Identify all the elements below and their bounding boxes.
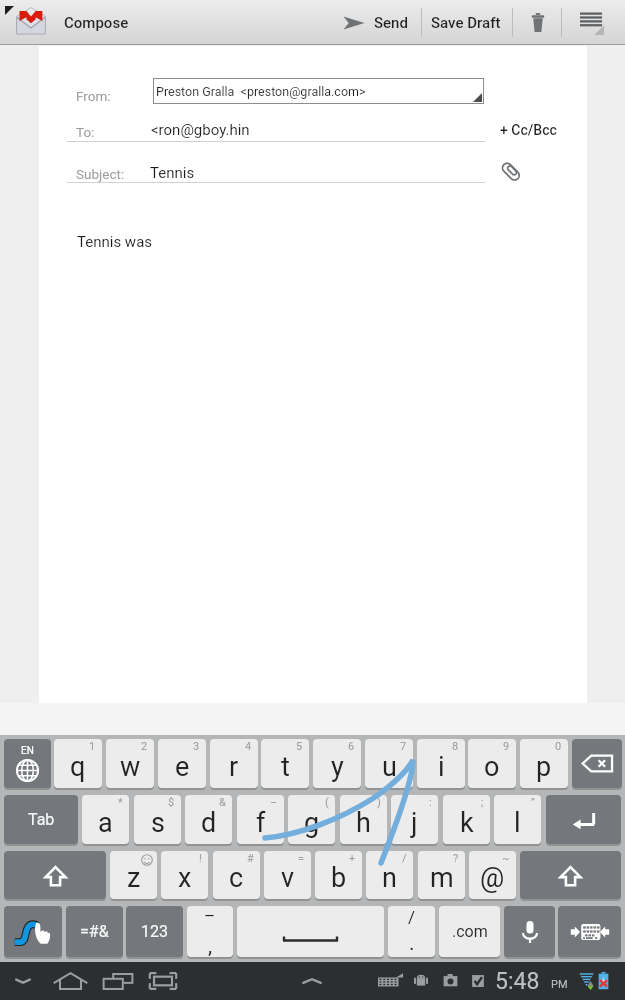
staticText: l [514, 807, 521, 839]
staticText: u [382, 751, 397, 783]
staticText: & [219, 796, 226, 809]
button[interactable]: b [315, 851, 362, 899]
staticText: p [536, 751, 552, 783]
button[interactable]: d [185, 795, 232, 844]
button[interactable]: Tennis was [67, 230, 517, 260]
staticText: Preston Gralla <preston@gralla.com> [156, 84, 366, 99]
button[interactable]: =#& [66, 906, 123, 957]
button[interactable] [572, 739, 622, 788]
button[interactable] [237, 906, 384, 957]
staticText: $ [168, 796, 175, 809]
button[interactable]: Recent apps [94, 962, 142, 1000]
button[interactable]: j [391, 795, 438, 844]
staticText: k [460, 807, 474, 839]
button[interactable]: t [261, 739, 309, 788]
staticText: Save Draft [431, 14, 501, 32]
staticText: ; [481, 796, 484, 809]
button[interactable]: @ [469, 851, 516, 899]
staticText: ~ [502, 852, 510, 865]
button[interactable]: 123 [126, 906, 183, 957]
button[interactable] [546, 795, 621, 844]
staticText: =#& [80, 922, 109, 941]
button[interactable]: .com [439, 906, 500, 957]
button[interactable]: u [365, 739, 413, 788]
button[interactable]: v [264, 851, 311, 899]
staticText: r [229, 751, 239, 783]
button[interactable]: Send [336, 0, 416, 45]
button[interactable] [558, 906, 621, 957]
button[interactable]: Preston Gralla <preston@gralla.com> [153, 78, 484, 104]
staticText: 6 [348, 740, 355, 753]
button[interactable]: g [288, 795, 335, 844]
button[interactable]: z [110, 851, 157, 899]
staticText: 5 [296, 740, 303, 753]
button[interactable] [4, 906, 62, 957]
staticText: 2 [141, 740, 148, 753]
button[interactable]: h [340, 795, 387, 844]
staticText: 5:48 [495, 968, 540, 995]
button[interactable]: a [82, 795, 129, 844]
staticText: EN [21, 745, 34, 757]
staticText: PM [551, 978, 568, 991]
staticText: 123 [141, 922, 168, 941]
button[interactable]: Save Draft [424, 0, 508, 45]
staticText: s [151, 807, 165, 839]
staticText: b [331, 862, 347, 894]
staticText: o [484, 751, 500, 783]
staticText: * [118, 796, 123, 809]
button[interactable]: Show notifications [292, 962, 332, 1000]
button[interactable]: Subject: [67, 156, 485, 183]
button[interactable]: s [134, 795, 181, 844]
button[interactable]: o [468, 739, 516, 788]
staticText: ? [453, 852, 459, 865]
button[interactable]: l [494, 795, 541, 844]
button[interactable]: + Cc/Bcc [494, 118, 563, 142]
staticText: i [438, 751, 445, 783]
staticText: # [247, 852, 254, 865]
staticText: v [281, 862, 295, 894]
button[interactable]: / [388, 906, 435, 957]
button[interactable] [4, 851, 106, 899]
staticText: q [70, 751, 86, 783]
button[interactable]: Tab [4, 795, 78, 844]
staticText: From: [76, 88, 111, 104]
staticText: y [331, 751, 344, 783]
button[interactable]: Home [46, 962, 94, 1000]
staticText: m [430, 862, 454, 894]
staticText: <ron@gboy.hin [151, 121, 250, 139]
staticText: – [204, 906, 216, 926]
button[interactable]: w [106, 739, 154, 788]
staticText: x [178, 862, 192, 894]
button[interactable]: r [210, 739, 258, 788]
button[interactable]: To: [67, 115, 485, 142]
button[interactable] [520, 851, 621, 899]
button[interactable]: y [313, 739, 361, 788]
button[interactable]: k [443, 795, 490, 844]
button[interactable]: EN [4, 739, 51, 788]
button[interactable]: n [366, 851, 413, 899]
staticText: . [409, 931, 415, 956]
button[interactable]: q [54, 739, 102, 788]
staticText: = [298, 852, 305, 865]
button[interactable]: e [158, 739, 206, 788]
staticText: ” [531, 796, 535, 809]
staticText: 0 [555, 740, 562, 753]
button[interactable]: f [237, 795, 284, 844]
staticText: To: [76, 124, 95, 140]
button[interactable]: m [418, 851, 465, 899]
button[interactable]: x [161, 851, 208, 899]
staticText: g [304, 807, 320, 839]
button[interactable]: i [417, 739, 465, 788]
button[interactable]: – [187, 906, 233, 957]
button[interactable]: Back [3, 962, 43, 1000]
staticText: Tennis was [77, 233, 153, 251]
button[interactable]: Compose [8, 0, 168, 45]
button[interactable]: Attach file [496, 157, 526, 186]
staticText: 4 [245, 740, 252, 753]
button[interactable]: Discard [515, 0, 560, 45]
button[interactable]: p [520, 739, 568, 788]
button[interactable]: More options [564, 0, 620, 45]
button[interactable] [504, 906, 555, 957]
button[interactable]: c [213, 851, 260, 899]
button[interactable]: Screenshot [139, 962, 187, 1000]
